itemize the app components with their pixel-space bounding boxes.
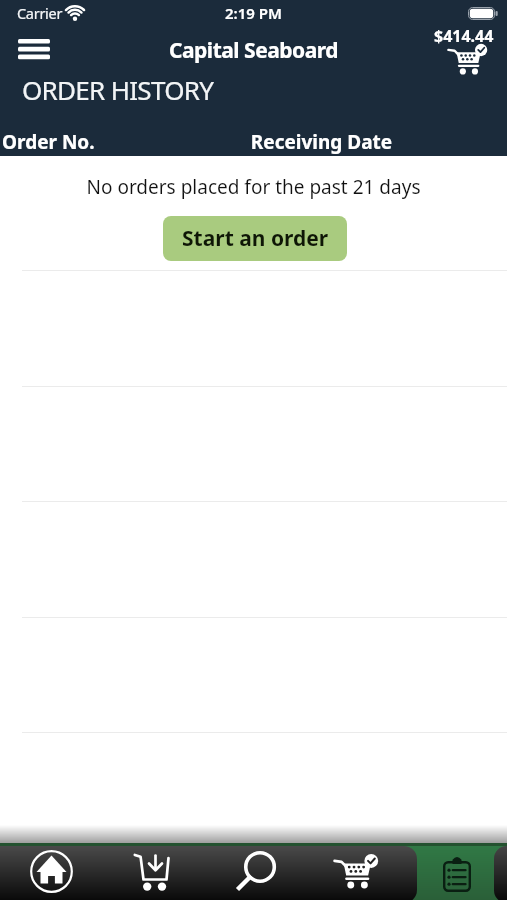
staticText: ORDER HISTORY [22, 72, 214, 107]
button[interactable] [447, 42, 491, 76]
staticText: Receiving Date [68, 129, 507, 155]
staticText: Carrier [17, 3, 63, 23]
button[interactable] [406, 843, 507, 900]
button[interactable] [0, 843, 102, 900]
staticText: Start an order [182, 224, 329, 253]
staticText: Capital Seaboard [0, 36, 507, 65]
staticText: Order No. [2, 129, 95, 155]
button[interactable] [204, 843, 305, 900]
button[interactable] [102, 843, 204, 900]
staticText: No orders placed for the past 21 days [0, 174, 507, 200]
button[interactable]: Start an order [163, 216, 347, 261]
staticText: $414.44 [434, 25, 494, 47]
button[interactable] [10, 32, 58, 66]
staticText: 2:19 PM [0, 3, 507, 23]
button[interactable] [305, 843, 406, 900]
